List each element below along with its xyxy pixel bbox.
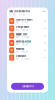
staticText: Budget 2024 — [16, 33, 28, 36]
staticText: See all — [42, 10, 46, 12]
staticText: PDF · 5.2 MB — [16, 58, 29, 60]
staticText: PDF · 1.4 MB — [16, 36, 29, 38]
staticText: Contracts — [16, 55, 26, 58]
staticText: Quarterly Report — [16, 18, 33, 21]
staticText: Upload File — [21, 85, 33, 88]
button[interactable]: Roadmap — [7, 47, 48, 54]
button[interactable]: Contracts — [7, 54, 48, 61]
staticText: 12 files · 3.4 GB — [9, 14, 24, 16]
staticText: PDF · 340 KB — [16, 43, 28, 46]
staticText: PDF · 990 KB — [16, 51, 28, 53]
staticText: My Documents — [9, 10, 29, 13]
button[interactable]: Quarterly Report — [7, 17, 48, 25]
button[interactable]: Meeting Notes — [7, 39, 48, 47]
staticText: Roadmap — [16, 48, 24, 50]
button[interactable]: Upload File — [11, 83, 44, 90]
staticText: Meeting Notes — [16, 40, 31, 43]
staticText: PDF · 820 KB — [16, 29, 28, 31]
button[interactable]: Design Specs — [7, 25, 48, 32]
staticText: PDF · 2.1 MB — [16, 21, 28, 24]
staticText: Design Specs — [16, 26, 29, 28]
button[interactable]: Budget 2024 — [7, 32, 48, 39]
